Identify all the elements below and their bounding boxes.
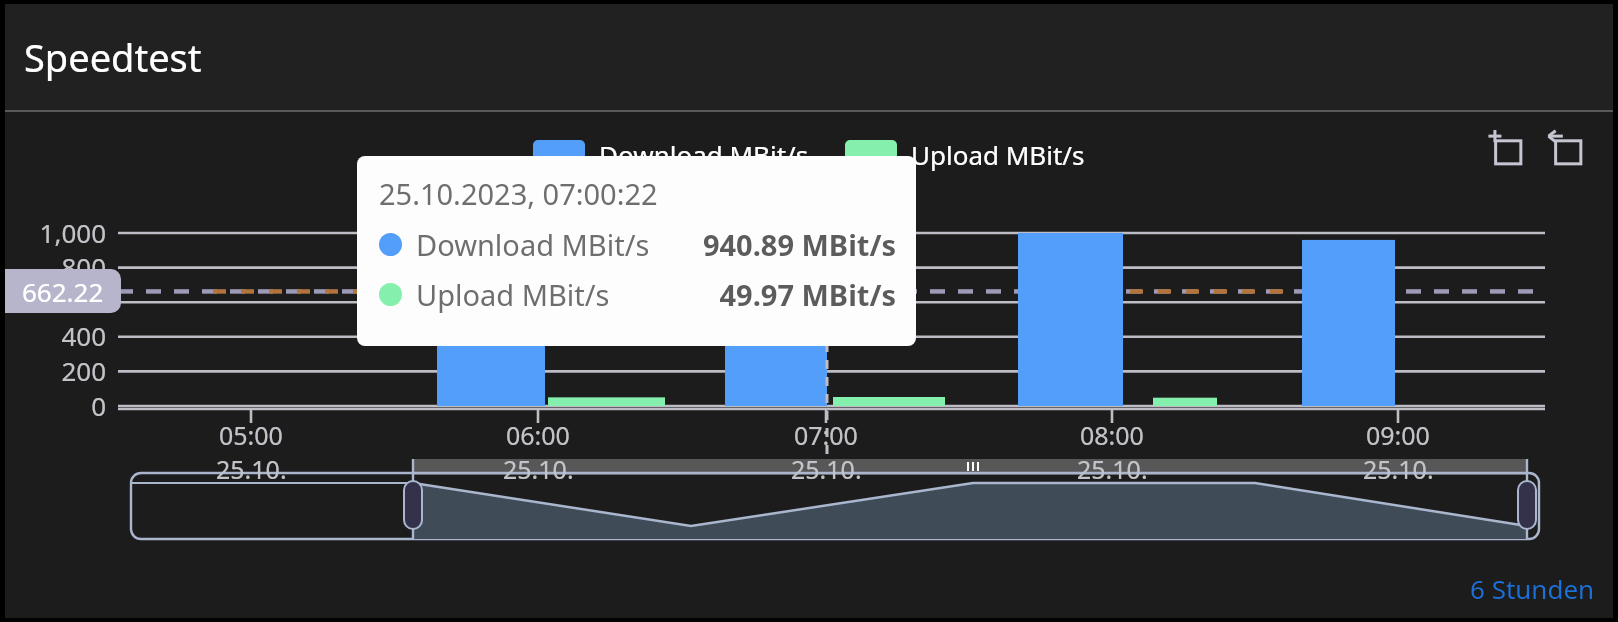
staticText: 25.10. <box>791 452 862 486</box>
staticText: 07:00 <box>794 418 858 452</box>
staticText: 25.10. <box>1077 452 1148 486</box>
staticText: 25.10. <box>1363 452 1434 486</box>
staticText: Upload MBit/s <box>416 275 719 314</box>
staticText: 25.10. <box>503 452 574 486</box>
staticText: 08:00 <box>1080 418 1144 452</box>
staticText: 09:00 <box>1366 418 1430 452</box>
button[interactable]: Download MBit/s <box>531 137 811 172</box>
button[interactable]: 6 Stunden <box>1470 571 1613 618</box>
staticText: 06:00 <box>506 418 570 452</box>
staticText: 05:00 <box>219 418 283 452</box>
button[interactable]: 25.10.2023, 07:00:22 <box>357 156 916 346</box>
staticText: 662.22 <box>22 274 104 309</box>
staticText: 6 Stunden <box>1470 571 1595 606</box>
staticText: Download MBit/s <box>416 225 702 264</box>
staticText: 25.10.2023, 07:00:22 <box>379 174 658 213</box>
staticText: Upload MBit/s <box>911 137 1085 172</box>
staticText: Speedtest <box>24 31 202 83</box>
staticText: 940.89 MBit/s <box>702 225 896 264</box>
staticText: 600 <box>61 284 106 319</box>
staticText: 400 <box>61 318 106 353</box>
staticText: 800 <box>61 249 106 284</box>
button[interactable]: Upload MBit/s <box>843 137 1087 172</box>
staticText: 0 <box>91 388 106 423</box>
staticText: 49.97 MBit/s <box>719 275 896 314</box>
button[interactable]: Zoom in <box>1481 124 1529 172</box>
staticText: 200 <box>61 353 106 388</box>
staticText: Download MBit/s <box>599 137 809 172</box>
staticText: 1,000 <box>39 215 106 250</box>
staticText: 25.10. <box>216 452 287 486</box>
button[interactable]: Reset zoom <box>1541 124 1589 172</box>
